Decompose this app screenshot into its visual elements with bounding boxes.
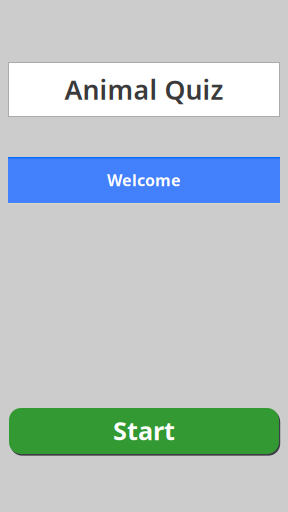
staticText: Welcome: [107, 169, 181, 191]
staticText: Start: [113, 414, 175, 447]
staticText: Animal Quiz: [64, 72, 223, 107]
button[interactable]: Start: [8, 408, 280, 454]
